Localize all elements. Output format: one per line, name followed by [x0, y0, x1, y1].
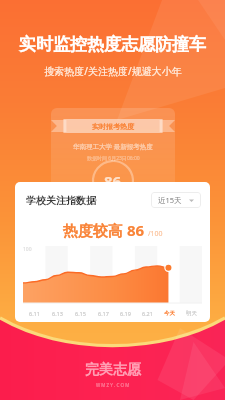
staticText: /100	[148, 229, 163, 239]
staticText: 6.13	[52, 310, 63, 317]
button[interactable]: 近15天	[151, 192, 201, 208]
staticText: 华南理工大学 最新报考热度	[73, 142, 153, 151]
staticText: 86	[104, 171, 122, 191]
staticText: 完美志愿	[85, 361, 141, 379]
staticText: 明天	[186, 310, 197, 317]
staticText: 6.19	[120, 310, 131, 317]
staticText: 6.11	[29, 310, 40, 317]
staticText: 热度较高 86	[63, 220, 145, 240]
staticText: 数据时间 6月23日06:00	[87, 155, 140, 162]
staticText: 实时报考热度	[92, 122, 134, 131]
staticText: 搜索热度/关注热度/规避大小年	[44, 64, 182, 78]
staticText: 近15天	[158, 195, 182, 205]
staticText: 6.15	[75, 310, 86, 317]
staticText: 6.21	[142, 310, 153, 317]
staticText: 实时监控热度志愿防撞车	[19, 34, 206, 55]
staticText: 学校关注指数据	[26, 194, 96, 207]
staticText: W M Z Y . C O M	[96, 382, 130, 388]
staticText: 今天	[164, 310, 175, 317]
staticText: 100	[23, 246, 32, 253]
staticText: 6.17	[98, 310, 109, 317]
